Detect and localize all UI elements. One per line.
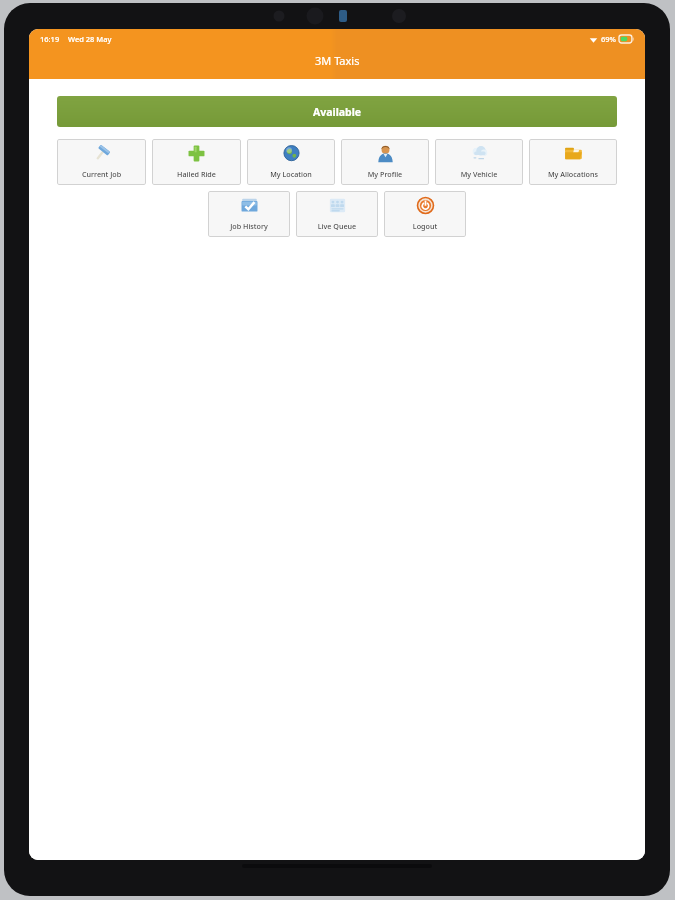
button[interactable]: Live Queue	[296, 191, 378, 237]
staticText: My Vehicle	[435, 169, 523, 179]
staticText: My Profile	[341, 169, 429, 179]
button[interactable]: My Vehicle	[435, 139, 523, 185]
button[interactable]: My Allocations	[529, 139, 617, 185]
staticText: Wed 28 May	[68, 34, 112, 44]
staticText: 3M Taxis	[315, 53, 360, 68]
staticText: Job History	[208, 221, 290, 231]
button[interactable]: Job History	[208, 191, 290, 237]
button[interactable]: My Profile	[341, 139, 429, 185]
staticText: My Location	[247, 169, 335, 179]
button[interactable]: My Location	[247, 139, 335, 185]
button[interactable]: Hailed Ride	[152, 139, 241, 185]
button[interactable]: Available	[57, 96, 617, 127]
staticText: Logout	[384, 221, 466, 231]
button[interactable]: Logout	[384, 191, 466, 237]
staticText: 69%	[601, 34, 616, 44]
staticText: My Allocations	[529, 169, 617, 179]
staticText: Live Queue	[296, 221, 378, 231]
staticText: Current Job	[57, 169, 146, 179]
staticText: 16:19	[40, 34, 60, 44]
staticText: Available	[313, 105, 362, 119]
button[interactable]: Current Job	[57, 139, 146, 185]
staticText: Hailed Ride	[152, 169, 241, 179]
